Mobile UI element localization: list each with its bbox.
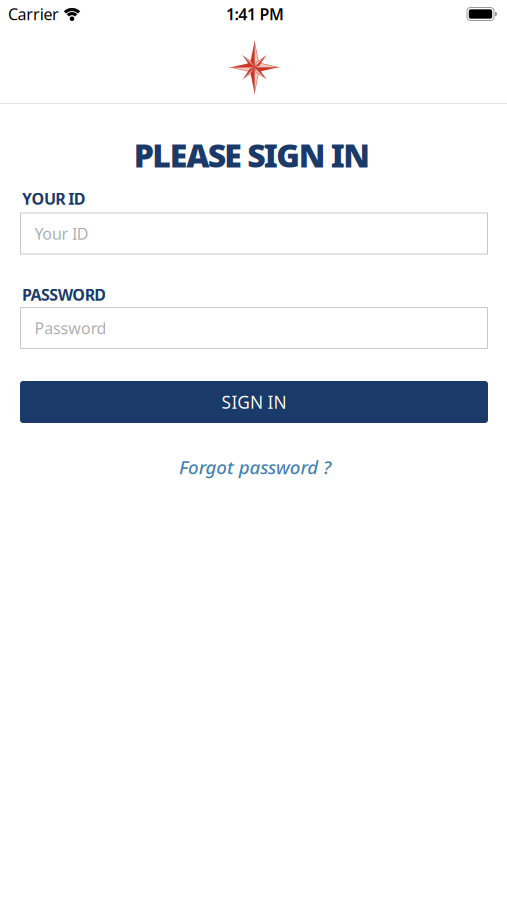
staticText: Your ID xyxy=(34,223,89,244)
button[interactable]: Your ID xyxy=(20,213,487,254)
button[interactable]: Password xyxy=(20,307,487,348)
staticText: PASSWORD xyxy=(22,284,106,305)
button[interactable]: Forgot password ? xyxy=(179,455,331,479)
staticText: Password xyxy=(34,317,106,339)
staticText: SIGN IN xyxy=(222,390,286,413)
button[interactable]: SIGN IN xyxy=(20,381,488,423)
staticText: Carrier xyxy=(8,3,59,25)
staticText: 1:41 PM xyxy=(226,3,284,25)
staticText: PLEASE SIGN IN xyxy=(134,134,370,176)
staticText: Forgot password ? xyxy=(179,455,331,479)
staticText: YOUR ID xyxy=(22,188,86,209)
